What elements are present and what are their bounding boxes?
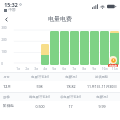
staticText: 200	[1, 38, 7, 42]
staticText: 月份	[3, 75, 10, 79]
staticText: 11月	[112, 67, 118, 71]
button[interactable]: 返回	[0, 13, 12, 25]
staticText: 9月	[92, 67, 97, 71]
staticText: 12月	[3, 84, 11, 89]
staticText: 电量电费	[48, 15, 72, 23]
staticText: 电费(元)	[65, 75, 77, 79]
staticText: 6月	[62, 67, 67, 71]
staticText: 中国	[8, 8, 16, 13]
staticText: 7月	[72, 67, 77, 71]
button[interactable]: 12月	[0, 81, 120, 92]
staticText: 598	[36, 84, 43, 89]
staticText: 300	[1, 26, 7, 30]
button[interactable]	[100, 31, 109, 65]
staticText: 电费(元)	[96, 95, 108, 99]
button[interactable]: 阶梯电	[0, 101, 120, 112]
staticText: 3月	[34, 67, 39, 71]
staticText: 8月	[82, 67, 87, 71]
button[interactable]: 充电费提示	[108, 56, 118, 67]
staticText: 9.99	[98, 104, 106, 109]
button[interactable]	[50, 31, 59, 65]
button[interactable]	[70, 31, 79, 65]
staticText: 0.500	[35, 104, 45, 109]
staticText: 阶梯电	[3, 104, 14, 109]
staticText: 10月	[102, 67, 108, 71]
staticText: 78.82	[66, 84, 76, 89]
staticText: 1月	[16, 67, 21, 71]
button[interactable]	[80, 31, 89, 65]
staticText: 5月	[52, 67, 57, 71]
staticText: 峰电量(千瓦时)	[29, 95, 50, 99]
staticText: 2月	[25, 67, 30, 71]
staticText: 谷电量(千瓦时)	[60, 95, 81, 99]
staticText: 电量(千瓦时)	[31, 75, 49, 79]
button[interactable]	[90, 31, 99, 65]
staticText: 4月	[43, 67, 48, 71]
staticText: 17	[68, 104, 73, 109]
staticText: 抄表周期	[95, 75, 108, 79]
button[interactable]	[60, 31, 69, 65]
staticText: 阶梯	[3, 95, 10, 99]
staticText: 100	[1, 50, 7, 54]
button[interactable]	[41, 44, 49, 65]
staticText: 11月1日-11月30日	[87, 84, 117, 89]
staticText: 0	[1, 62, 3, 66]
staticText: 15:32	[4, 1, 18, 8]
button[interactable]	[110, 31, 119, 65]
staticText: 充电费	[109, 64, 117, 67]
